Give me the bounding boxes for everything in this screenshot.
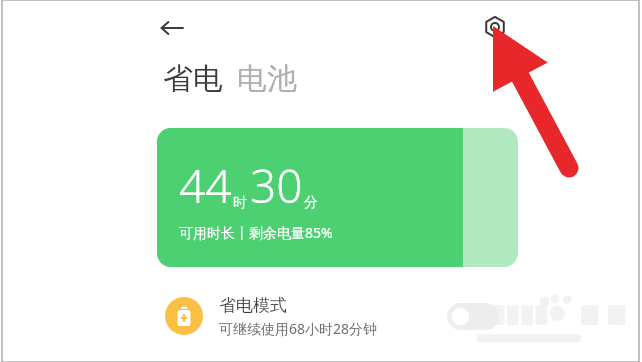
staticText: 省电: [163, 60, 223, 98]
button[interactable]: 44: [157, 128, 518, 267]
staticText: 可用时长丨剩余电量85%: [179, 223, 333, 242]
staticText: 分: [304, 194, 318, 212]
button[interactable]: Settings: [476, 8, 514, 46]
staticText: 可继续使用68小时28分钟: [219, 319, 378, 338]
button[interactable]: 电池: [237, 60, 297, 98]
button[interactable]: Power saving mode toggle: [447, 303, 499, 330]
button[interactable]: Back: [152, 8, 192, 48]
staticText: 44: [179, 154, 232, 217]
staticText: 时: [233, 194, 247, 212]
staticText: 30: [250, 154, 303, 217]
staticText: 电池: [237, 60, 297, 98]
staticText: 省电模式: [219, 295, 287, 316]
button[interactable]: 省电模式: [157, 288, 518, 344]
button[interactable]: 省电: [163, 60, 223, 98]
